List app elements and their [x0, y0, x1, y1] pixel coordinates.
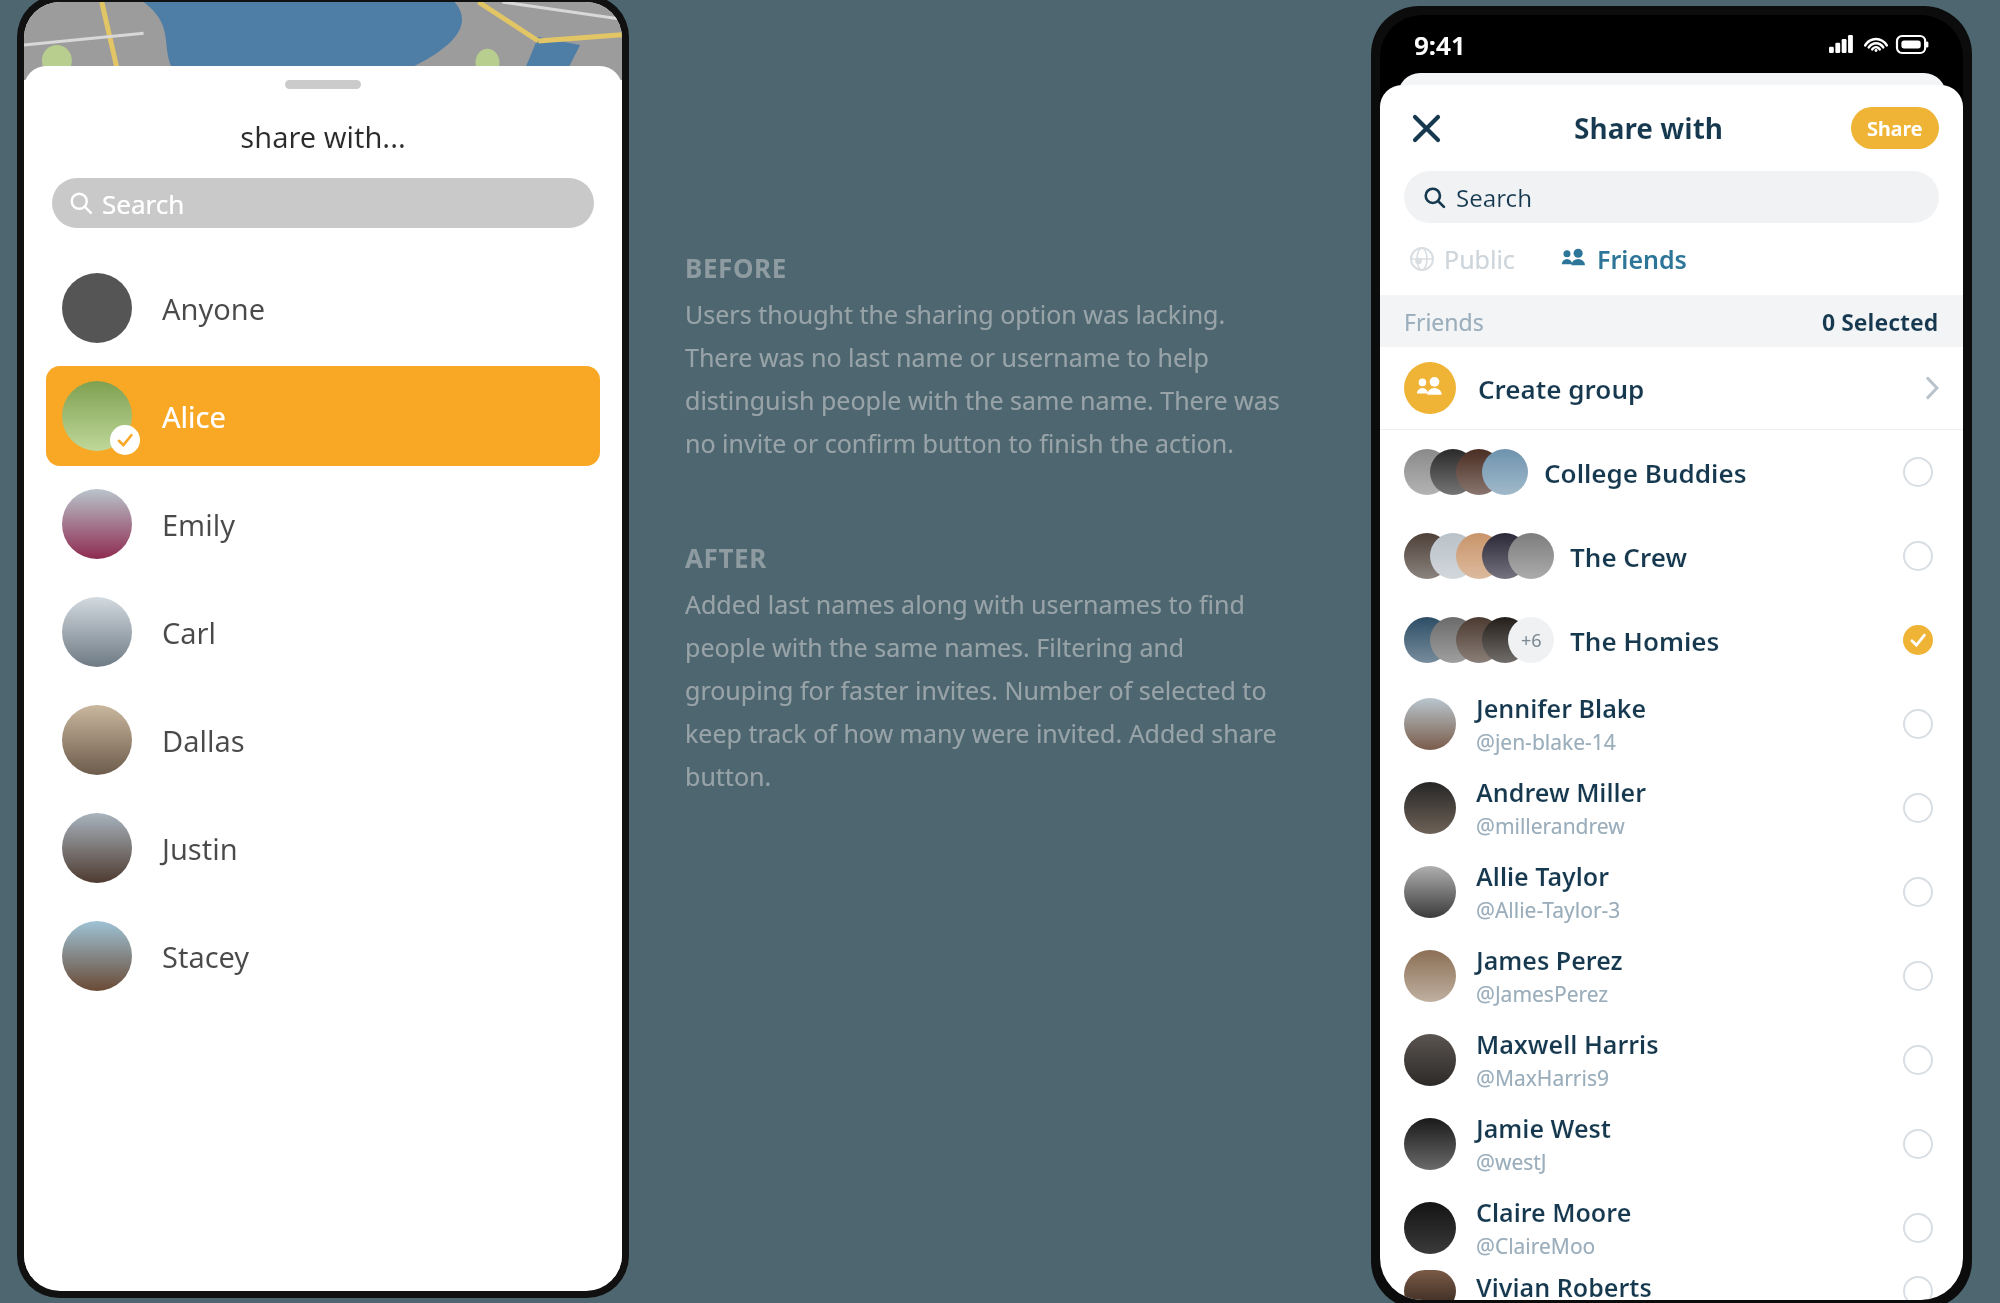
- staticText: Dallas: [162, 721, 245, 760]
- staticText: @Allie-Taylor-3: [1476, 896, 1621, 925]
- staticText: @millerandrew: [1476, 812, 1625, 841]
- staticText: The Crew: [1570, 539, 1687, 574]
- button[interactable]: Selected: [1899, 621, 1937, 659]
- button[interactable]: Public: [1404, 234, 1521, 284]
- staticText: Friends: [1597, 242, 1687, 276]
- button[interactable]: Andrew Miller: [1380, 766, 1963, 850]
- staticText: +6: [1521, 628, 1542, 653]
- button[interactable]: Select: [1899, 789, 1937, 827]
- staticText: Users thought the sharing option was lac…: [685, 297, 1281, 460]
- button[interactable]: Jamie West: [1380, 1102, 1963, 1186]
- button[interactable]: Justin: [62, 794, 584, 902]
- staticText: James Perez: [1476, 943, 1623, 977]
- staticText: The Homies: [1570, 623, 1720, 658]
- staticText: Andrew Miller: [1476, 775, 1647, 809]
- staticText: Stacey: [162, 937, 250, 976]
- button[interactable]: Search: [52, 178, 594, 228]
- staticText: Allie Taylor: [1476, 859, 1610, 893]
- button[interactable]: Create group: [1380, 347, 1963, 429]
- staticText: Carl: [162, 613, 217, 652]
- staticText: Anyone: [162, 289, 266, 328]
- staticText: Jamie West: [1476, 1111, 1611, 1145]
- button[interactable]: Jennifer Blake: [1380, 682, 1963, 766]
- staticText: Public: [1444, 242, 1515, 276]
- staticText: Claire Moore: [1476, 1195, 1632, 1229]
- staticText: @jen-blake-14: [1476, 728, 1616, 757]
- button[interactable]: Select: [1899, 957, 1937, 995]
- staticText: @ClaireMoo: [1476, 1232, 1596, 1261]
- staticText: AFTER: [685, 540, 767, 575]
- button[interactable]: Maxwell Harris: [1380, 1018, 1963, 1102]
- staticText: BEFORE: [685, 250, 787, 285]
- button[interactable]: +6: [1380, 598, 1963, 682]
- button[interactable]: Vivian Roberts: [1380, 1270, 1963, 1300]
- staticText: share with...: [24, 117, 622, 156]
- button[interactable]: Search: [1404, 171, 1939, 223]
- button[interactable]: Friends: [1555, 234, 1693, 284]
- staticText: Alice: [162, 397, 226, 436]
- staticText: @westJ: [1476, 1148, 1547, 1177]
- staticText: @MaxHarris9: [1476, 1064, 1609, 1093]
- staticText: Vivian Roberts: [1476, 1270, 1652, 1300]
- staticText: @JamesPerez: [1476, 980, 1609, 1009]
- button[interactable]: Select: [1899, 453, 1937, 491]
- button[interactable]: Claire Moore: [1380, 1186, 1963, 1270]
- staticText: Share: [1867, 115, 1923, 142]
- staticText: College Buddies: [1544, 455, 1747, 490]
- button[interactable]: The Crew: [1380, 514, 1963, 598]
- staticText: 0 Selected: [1822, 306, 1939, 337]
- staticText: Added last names along with usernames to…: [685, 587, 1281, 793]
- staticText: 9:41: [1414, 27, 1466, 62]
- button[interactable]: Share: [1851, 107, 1939, 149]
- staticText: Justin: [162, 829, 238, 868]
- button[interactable]: Select: [1899, 1272, 1937, 1300]
- button[interactable]: Select: [1899, 537, 1937, 575]
- button[interactable]: Select: [1899, 1041, 1937, 1079]
- staticText: Search: [102, 186, 185, 221]
- staticText: Jennifer Blake: [1476, 691, 1647, 725]
- staticText: Create group: [1478, 371, 1645, 406]
- button[interactable]: Select: [1899, 1209, 1937, 1247]
- button[interactable]: Select: [1899, 705, 1937, 743]
- button[interactable]: College Buddies: [1380, 430, 1963, 514]
- button[interactable]: Select: [1899, 873, 1937, 911]
- staticText: Friends: [1404, 306, 1484, 337]
- button[interactable]: Allie Taylor: [1380, 850, 1963, 934]
- staticText: Share with: [1574, 109, 1724, 147]
- button[interactable]: Anyone: [62, 254, 584, 362]
- button[interactable]: Stacey: [62, 902, 584, 1010]
- button[interactable]: Select: [1899, 1125, 1937, 1163]
- staticText: Emily: [162, 505, 235, 544]
- button[interactable]: Alice: [46, 366, 600, 466]
- staticText: Maxwell Harris: [1476, 1027, 1659, 1061]
- button[interactable]: Close: [1404, 106, 1448, 150]
- button[interactable]: Dallas: [62, 686, 584, 794]
- button[interactable]: Carl: [62, 578, 584, 686]
- button[interactable]: Emily: [62, 470, 584, 578]
- button[interactable]: James Perez: [1380, 934, 1963, 1018]
- staticText: Search: [1456, 181, 1532, 214]
